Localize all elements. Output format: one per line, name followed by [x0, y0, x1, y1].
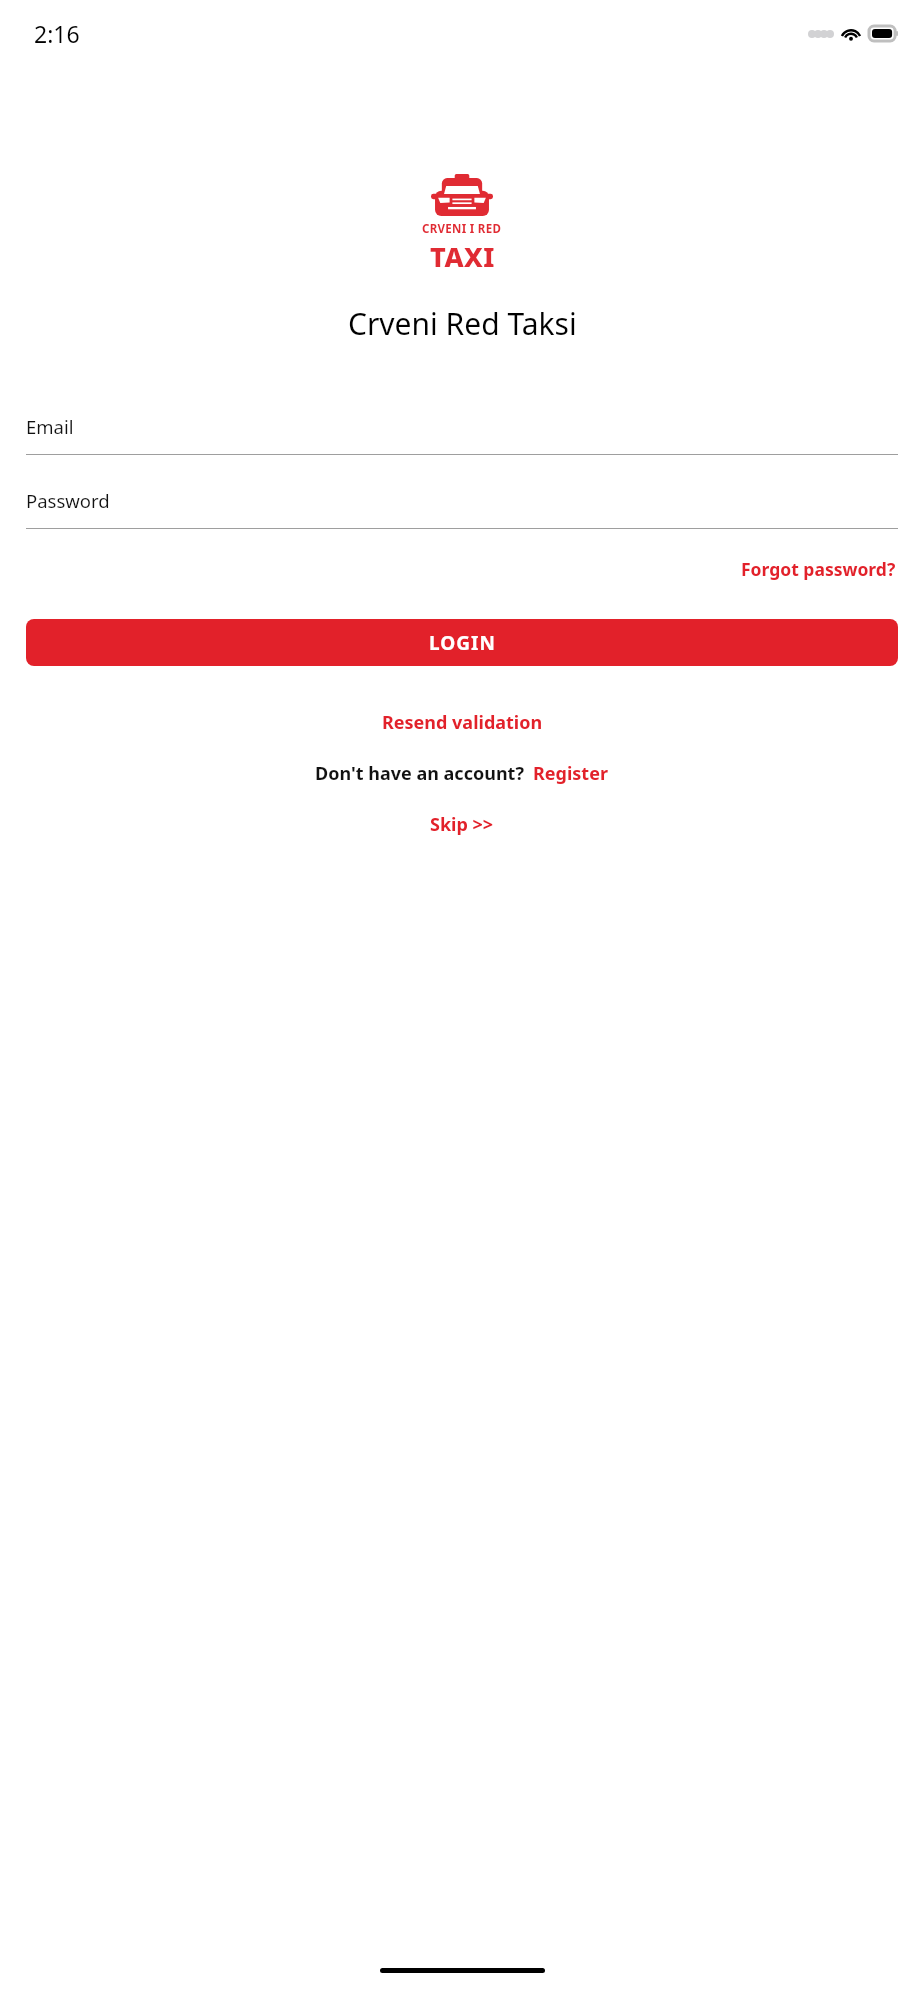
button[interactable]: Skip >>: [422, 806, 502, 843]
staticText: 2:16: [34, 18, 80, 49]
staticText: Skip >>: [430, 812, 494, 837]
staticText: Don't have an account?: [315, 761, 524, 786]
staticText: CRVENI I RED: [422, 221, 502, 237]
button[interactable]: Forgot password?: [739, 551, 898, 587]
button[interactable]: Password: [26, 488, 898, 529]
button[interactable]: Email: [26, 414, 898, 455]
staticText: LOGIN: [429, 630, 496, 656]
staticText: Forgot password?: [741, 557, 896, 581]
button[interactable]: LOGIN: [26, 619, 898, 666]
staticText: TAXI: [430, 238, 495, 275]
staticText: Email: [26, 414, 74, 439]
staticText: Resend validation: [382, 710, 543, 735]
staticText: Password: [26, 488, 110, 513]
staticText: Register: [533, 761, 608, 786]
button[interactable]: Resend validation: [374, 704, 551, 741]
button[interactable]: Register: [531, 757, 610, 790]
staticText: Crveni Red Taksi: [348, 303, 577, 344]
